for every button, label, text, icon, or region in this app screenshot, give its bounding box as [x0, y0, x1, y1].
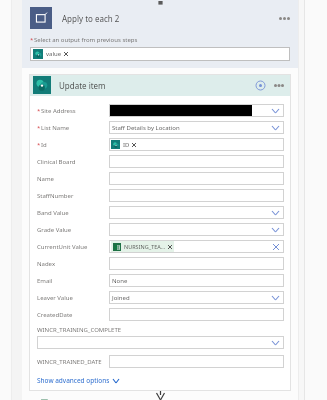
staticText: Id: [41, 141, 47, 149]
staticText: Apply to each 2: [62, 13, 120, 24]
staticText: Band Value: [37, 209, 69, 217]
button[interactable]: value: [30, 47, 290, 61]
button[interactable]: CreatedDate: [37, 306, 284, 323]
staticText: Grade Value: [37, 226, 72, 234]
button[interactable]: StaffNumber: [37, 187, 284, 204]
staticText: ID: [123, 141, 130, 149]
button[interactable]: *: [37, 102, 284, 119]
staticText: Show advanced options: [37, 376, 110, 385]
staticText: List Name: [41, 124, 70, 132]
button[interactable]: Band Value: [37, 204, 284, 221]
staticText: *: [37, 107, 41, 115]
staticText: Site Address: [41, 107, 76, 115]
button[interactable]: *: [37, 119, 284, 136]
staticText: StaffNumber: [37, 192, 74, 200]
button[interactable]: Show advanced options: [37, 376, 119, 385]
staticText: Nadex: [37, 260, 56, 268]
staticText: Select an output from previous steps: [34, 36, 138, 44]
button[interactable]: Update item: [33, 74, 286, 96]
staticText: None: [112, 277, 128, 285]
button[interactable]: Leaver Value: [37, 289, 284, 306]
staticText: Staff Details by Location: [112, 124, 180, 132]
staticText: WINCR_TRAINING_COMPLETE: [37, 326, 122, 334]
button[interactable]: Grade Value: [37, 221, 284, 238]
button[interactable]: Email: [37, 272, 284, 289]
button[interactable]: Apply to each 2: [30, 5, 292, 31]
staticText: *: [30, 36, 34, 44]
staticText: WINCR_TRAINED_DATE: [37, 358, 102, 366]
staticText: *: [37, 124, 41, 132]
staticText: Clinical Board: [37, 158, 76, 166]
button[interactable]: More commands: [276, 10, 292, 26]
staticText: Leaver Value: [37, 294, 73, 302]
staticText: NURSING_TEA...: [124, 243, 166, 250]
staticText: Email: [37, 277, 53, 285]
staticText: CurrentUnit Value: [37, 243, 88, 251]
staticText: Name: [37, 175, 54, 183]
button[interactable]: More commands: [272, 78, 286, 92]
button[interactable]: *: [37, 136, 284, 153]
button[interactable]: Help: [253, 78, 267, 92]
button[interactable]: Clinical Board: [37, 153, 284, 170]
button[interactable]: WINCR_TRAINED_DATE: [37, 353, 284, 370]
staticText: Joined: [112, 294, 130, 302]
staticText: value: [46, 50, 62, 58]
button[interactable]: [37, 336, 284, 349]
staticText: *: [37, 141, 41, 149]
button[interactable]: Nadex: [37, 255, 284, 272]
staticText: CreatedDate: [37, 311, 73, 319]
button[interactable]: CurrentUnit Value: [37, 238, 284, 255]
staticText: Update item: [59, 80, 106, 91]
button[interactable]: Name: [37, 170, 284, 187]
